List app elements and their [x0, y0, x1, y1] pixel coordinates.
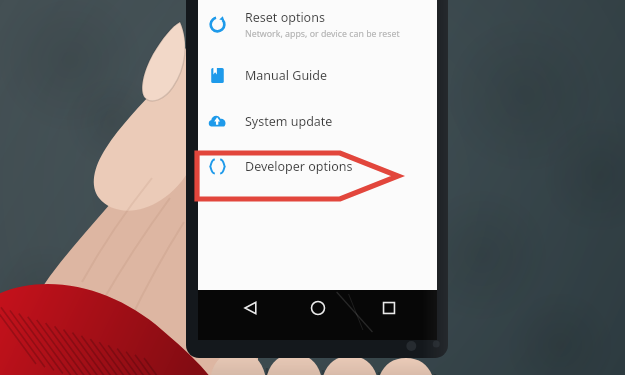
other: Manual Guide [208, 66, 227, 85]
button[interactable]: System update [198, 109, 437, 134]
staticText: Reset options [245, 9, 325, 26]
staticText: Developer options [245, 158, 353, 175]
other: Developer options [208, 157, 227, 176]
button[interactable]: Reset [198, 8, 437, 41]
staticText: System update [245, 113, 333, 130]
button[interactable]: Recent apps [376, 295, 402, 321]
staticText: Network, apps, or device can be reset [245, 28, 400, 40]
other: Developer options highlight [0, 0, 625, 375]
button[interactable]: Home [305, 295, 331, 321]
other: System update [208, 112, 227, 131]
staticText: Manual Guide [245, 67, 328, 84]
button[interactable]: Manual Guide [198, 63, 437, 88]
other: Reset [208, 15, 227, 34]
button[interactable]: Developer options [198, 154, 437, 179]
button[interactable]: Back [238, 295, 264, 321]
